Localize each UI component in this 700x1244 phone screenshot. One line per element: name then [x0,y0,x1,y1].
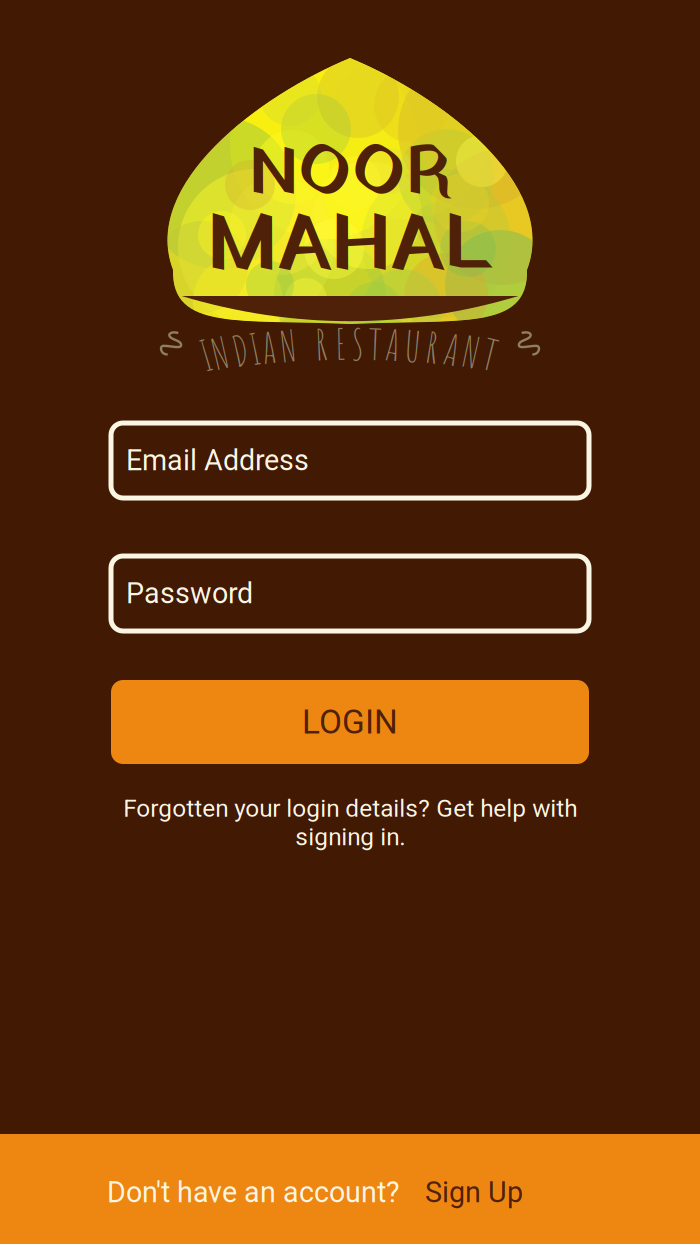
staticText: Don't have an account? [107,1176,400,1209]
button[interactable]: LOGIN [111,680,589,764]
staticText: Email Address [126,444,309,477]
staticText: S [351,318,364,370]
staticText: N [280,320,296,372]
staticText: A [444,324,459,376]
staticText: LOGIN [302,702,398,742]
button[interactable]: Forgotten your login details? Get help w… [111,794,589,851]
staticText: T [368,318,381,370]
button[interactable]: Email Address [111,423,589,498]
staticText: U [405,320,420,372]
staticText: A [385,319,400,371]
button[interactable]: Password [111,556,589,631]
staticText: Password [126,577,253,610]
staticText [301,319,308,371]
staticText: NOOR [249,126,451,224]
staticText: N [212,327,228,379]
staticText: R [426,322,438,374]
staticText: A [261,321,276,374]
staticText: Forgotten your login details? Get help w… [123,794,577,851]
staticText: MAHAL [207,187,493,307]
staticText: R [315,318,327,370]
button[interactable]: Don't have an account? [0,1134,700,1244]
staticText: I [249,323,260,375]
staticText: D [232,324,248,377]
staticText: N [463,326,479,378]
staticText: Sign Up [425,1176,523,1209]
staticText: I [200,329,211,381]
staticText: T [483,329,496,381]
staticText: E [335,318,345,370]
